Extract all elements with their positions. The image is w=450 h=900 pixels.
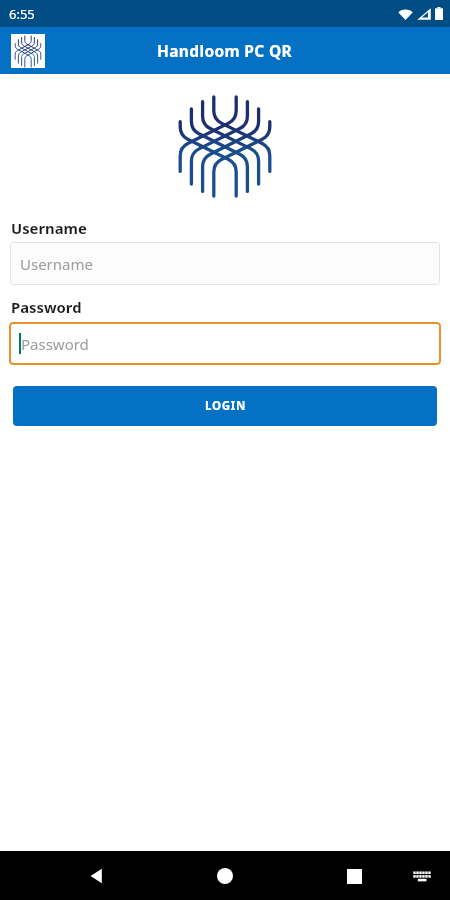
button[interactable]: App logo: [11, 34, 45, 68]
staticText: Username: [11, 218, 87, 238]
staticText: Username: [20, 254, 93, 274]
button[interactable]: Back: [81, 860, 113, 892]
button[interactable]: Recents: [338, 860, 370, 892]
staticText: LOGIN: [205, 398, 246, 414]
staticText: 6:55: [9, 5, 35, 23]
staticText: Password: [11, 297, 82, 317]
button[interactable]: Username: [10, 242, 440, 285]
button[interactable]: Home: [209, 860, 241, 892]
button[interactable]: LOGIN: [13, 386, 437, 426]
staticText: Password: [21, 334, 89, 354]
button[interactable]: Password: [9, 322, 441, 365]
staticText: Handloom PC QR: [157, 40, 293, 61]
button[interactable]: Hide keyboard: [409, 863, 435, 889]
